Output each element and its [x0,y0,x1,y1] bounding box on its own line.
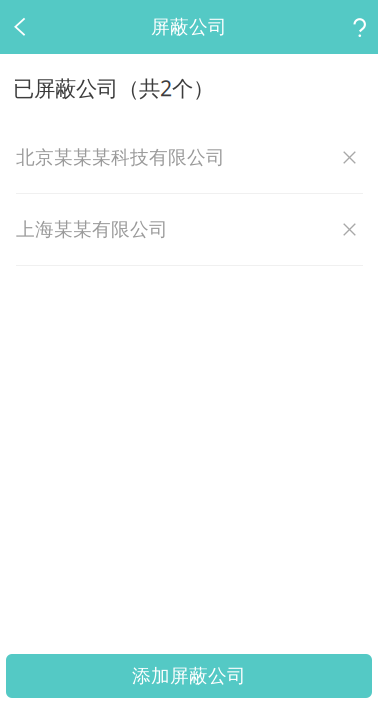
staticText: 上海某某有限公司 [16,218,168,241]
button[interactable]: 帮助 [342,3,378,51]
button[interactable]: 北京某某某科技有限公司 [0,122,378,193]
staticText: 添加屏蔽公司 [132,664,246,687]
button[interactable]: 返回 [0,3,40,51]
button[interactable]: 上海某某有限公司 [0,194,378,265]
button[interactable]: 添加屏蔽公司 [6,654,372,698]
staticText: 北京某某某科技有限公司 [16,146,225,169]
staticText: 屏蔽公司 [151,15,227,38]
staticText: 已屏蔽公司（共2个） [13,74,214,102]
